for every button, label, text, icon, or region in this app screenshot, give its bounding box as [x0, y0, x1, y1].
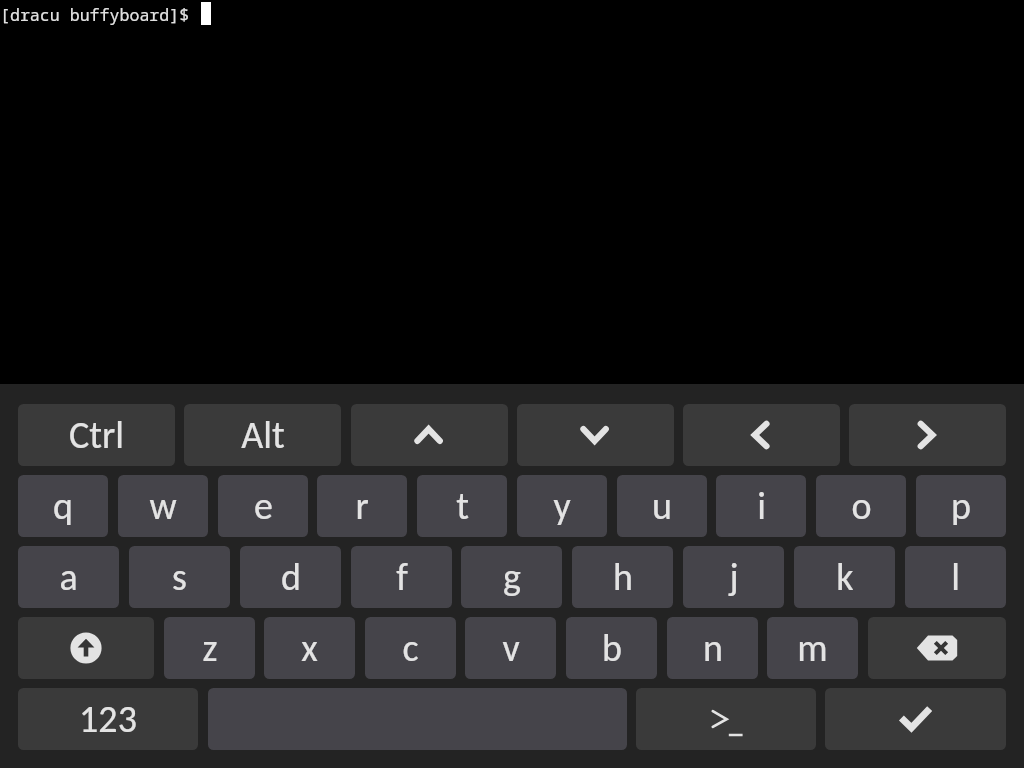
staticText: d	[281, 554, 301, 600]
button[interactable]: u	[617, 475, 707, 537]
staticText: k	[836, 554, 854, 600]
button[interactable]: Ctrl	[18, 404, 175, 466]
button[interactable]: Shift	[18, 617, 154, 679]
button[interactable]: z	[164, 617, 255, 679]
staticText: u	[652, 483, 672, 529]
button[interactable]: 123	[18, 688, 198, 750]
button[interactable]: a	[18, 546, 119, 608]
button[interactable]: k	[794, 546, 895, 608]
staticText: s	[172, 554, 187, 600]
staticText: o	[851, 483, 872, 529]
staticText: r	[355, 483, 369, 529]
button[interactable]: r	[317, 475, 407, 537]
staticText: Alt	[241, 412, 285, 458]
button[interactable]: q	[18, 475, 108, 537]
staticText: b	[602, 625, 622, 671]
button[interactable]: Arrow down	[517, 404, 674, 466]
button[interactable]: i	[716, 475, 806, 537]
staticText: a	[59, 554, 78, 600]
staticText: y	[553, 483, 571, 529]
staticText: c	[402, 625, 419, 671]
staticText: f	[396, 554, 408, 600]
button[interactable]: p	[916, 475, 1006, 537]
staticText: v	[502, 625, 520, 671]
button[interactable]: g	[461, 546, 562, 608]
staticText: p	[951, 483, 971, 529]
button[interactable]: y	[517, 475, 607, 537]
button[interactable]: v	[465, 617, 556, 679]
staticText: q	[53, 483, 73, 529]
button[interactable]: e	[218, 475, 308, 537]
staticText: w	[149, 483, 177, 529]
staticText: l	[951, 554, 960, 600]
staticText: x	[301, 625, 318, 671]
staticText: g	[503, 554, 521, 600]
staticText: n	[703, 625, 723, 671]
button[interactable]: Enter	[825, 688, 1006, 750]
staticText: 123	[79, 696, 137, 742]
button[interactable]: Arrow left	[683, 404, 840, 466]
button[interactable]: s	[129, 546, 230, 608]
button[interactable]: w	[118, 475, 208, 537]
button[interactable]: b	[566, 617, 657, 679]
button[interactable]: x	[264, 617, 355, 679]
staticText: h	[613, 554, 633, 600]
staticText: e	[254, 483, 273, 529]
button[interactable]: Arrow right	[849, 404, 1006, 466]
button[interactable]: Alt	[184, 404, 341, 466]
button[interactable]: m	[767, 617, 858, 679]
staticText: m	[797, 625, 828, 671]
button[interactable]: h	[572, 546, 673, 608]
button[interactable]: l	[905, 546, 1006, 608]
button[interactable]: Backspace	[868, 617, 1006, 679]
staticText: i	[757, 483, 766, 529]
button[interactable]: j	[683, 546, 784, 608]
staticText: t	[456, 483, 469, 529]
staticText: j	[729, 554, 739, 600]
button[interactable]: o	[816, 475, 906, 537]
button[interactable]: c	[365, 617, 456, 679]
staticText: [dracu buffyboard]$	[0, 3, 200, 26]
button[interactable]: Terminal	[636, 688, 816, 750]
staticText: z	[202, 625, 218, 671]
button[interactable]: Arrow up	[351, 404, 508, 466]
staticText: Ctrl	[69, 412, 124, 458]
button[interactable]: d	[240, 546, 341, 608]
button[interactable]: f	[351, 546, 452, 608]
button[interactable]: n	[667, 617, 758, 679]
button[interactable]: t	[417, 475, 507, 537]
